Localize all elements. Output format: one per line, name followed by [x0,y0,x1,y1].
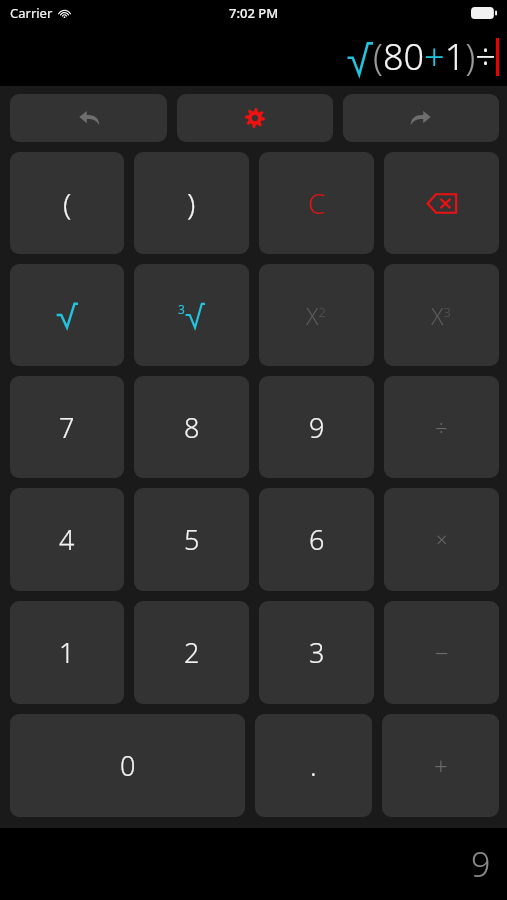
button[interactable]: 3 [259,601,374,704]
staticText: + [434,749,448,782]
button[interactable]: Backspace [384,152,499,254]
button[interactable]: 9 [259,376,374,478]
staticText: × [436,526,448,553]
button[interactable]: 2 [134,601,249,704]
staticText: X3 [431,300,452,331]
staticText: 7:02 PM [229,4,279,22]
staticText: ) [187,183,196,224]
staticText: 5 [184,521,200,558]
staticText: 2 [184,634,200,671]
staticText: 8 [184,409,200,446]
button[interactable]: X2 [259,264,374,366]
button[interactable]: 8 [134,376,249,478]
button[interactable]: Square root [10,264,124,366]
staticText: 9 [309,409,325,446]
button[interactable]: Undo [10,94,167,142]
button[interactable]: 7 [10,376,124,478]
staticText: 1 [59,634,75,671]
button[interactable]: ) [134,152,249,254]
staticText: 3 [309,634,325,671]
staticText: Carrier [10,4,53,22]
staticText: ÷ [435,412,448,442]
button[interactable]: 1 [10,601,124,704]
staticText: X2 [306,300,327,331]
staticText: ( [63,183,72,224]
button[interactable]: Settings [177,94,333,142]
staticText: (80+1)÷ [373,32,496,81]
staticText: 4 [59,521,75,558]
button[interactable]: X3 [384,264,499,366]
button[interactable]: Redo [343,94,499,142]
button[interactable]: 4 [10,488,124,591]
button[interactable]: 5 [134,488,249,591]
button[interactable]: . [255,714,372,817]
staticText: 3 [178,301,185,317]
staticText: 0 [120,747,136,784]
staticText: 6 [309,521,325,558]
staticText: 9 [471,841,491,887]
staticText: C [308,184,326,222]
staticText: 7 [59,409,75,446]
staticText: − [435,636,449,669]
button[interactable]: Cube root [134,264,249,366]
button[interactable]: 6 [259,488,374,591]
button[interactable]: ( [10,152,124,254]
button[interactable]: 0 [10,714,245,817]
staticText: . [310,747,317,784]
button[interactable]: C [259,152,374,254]
